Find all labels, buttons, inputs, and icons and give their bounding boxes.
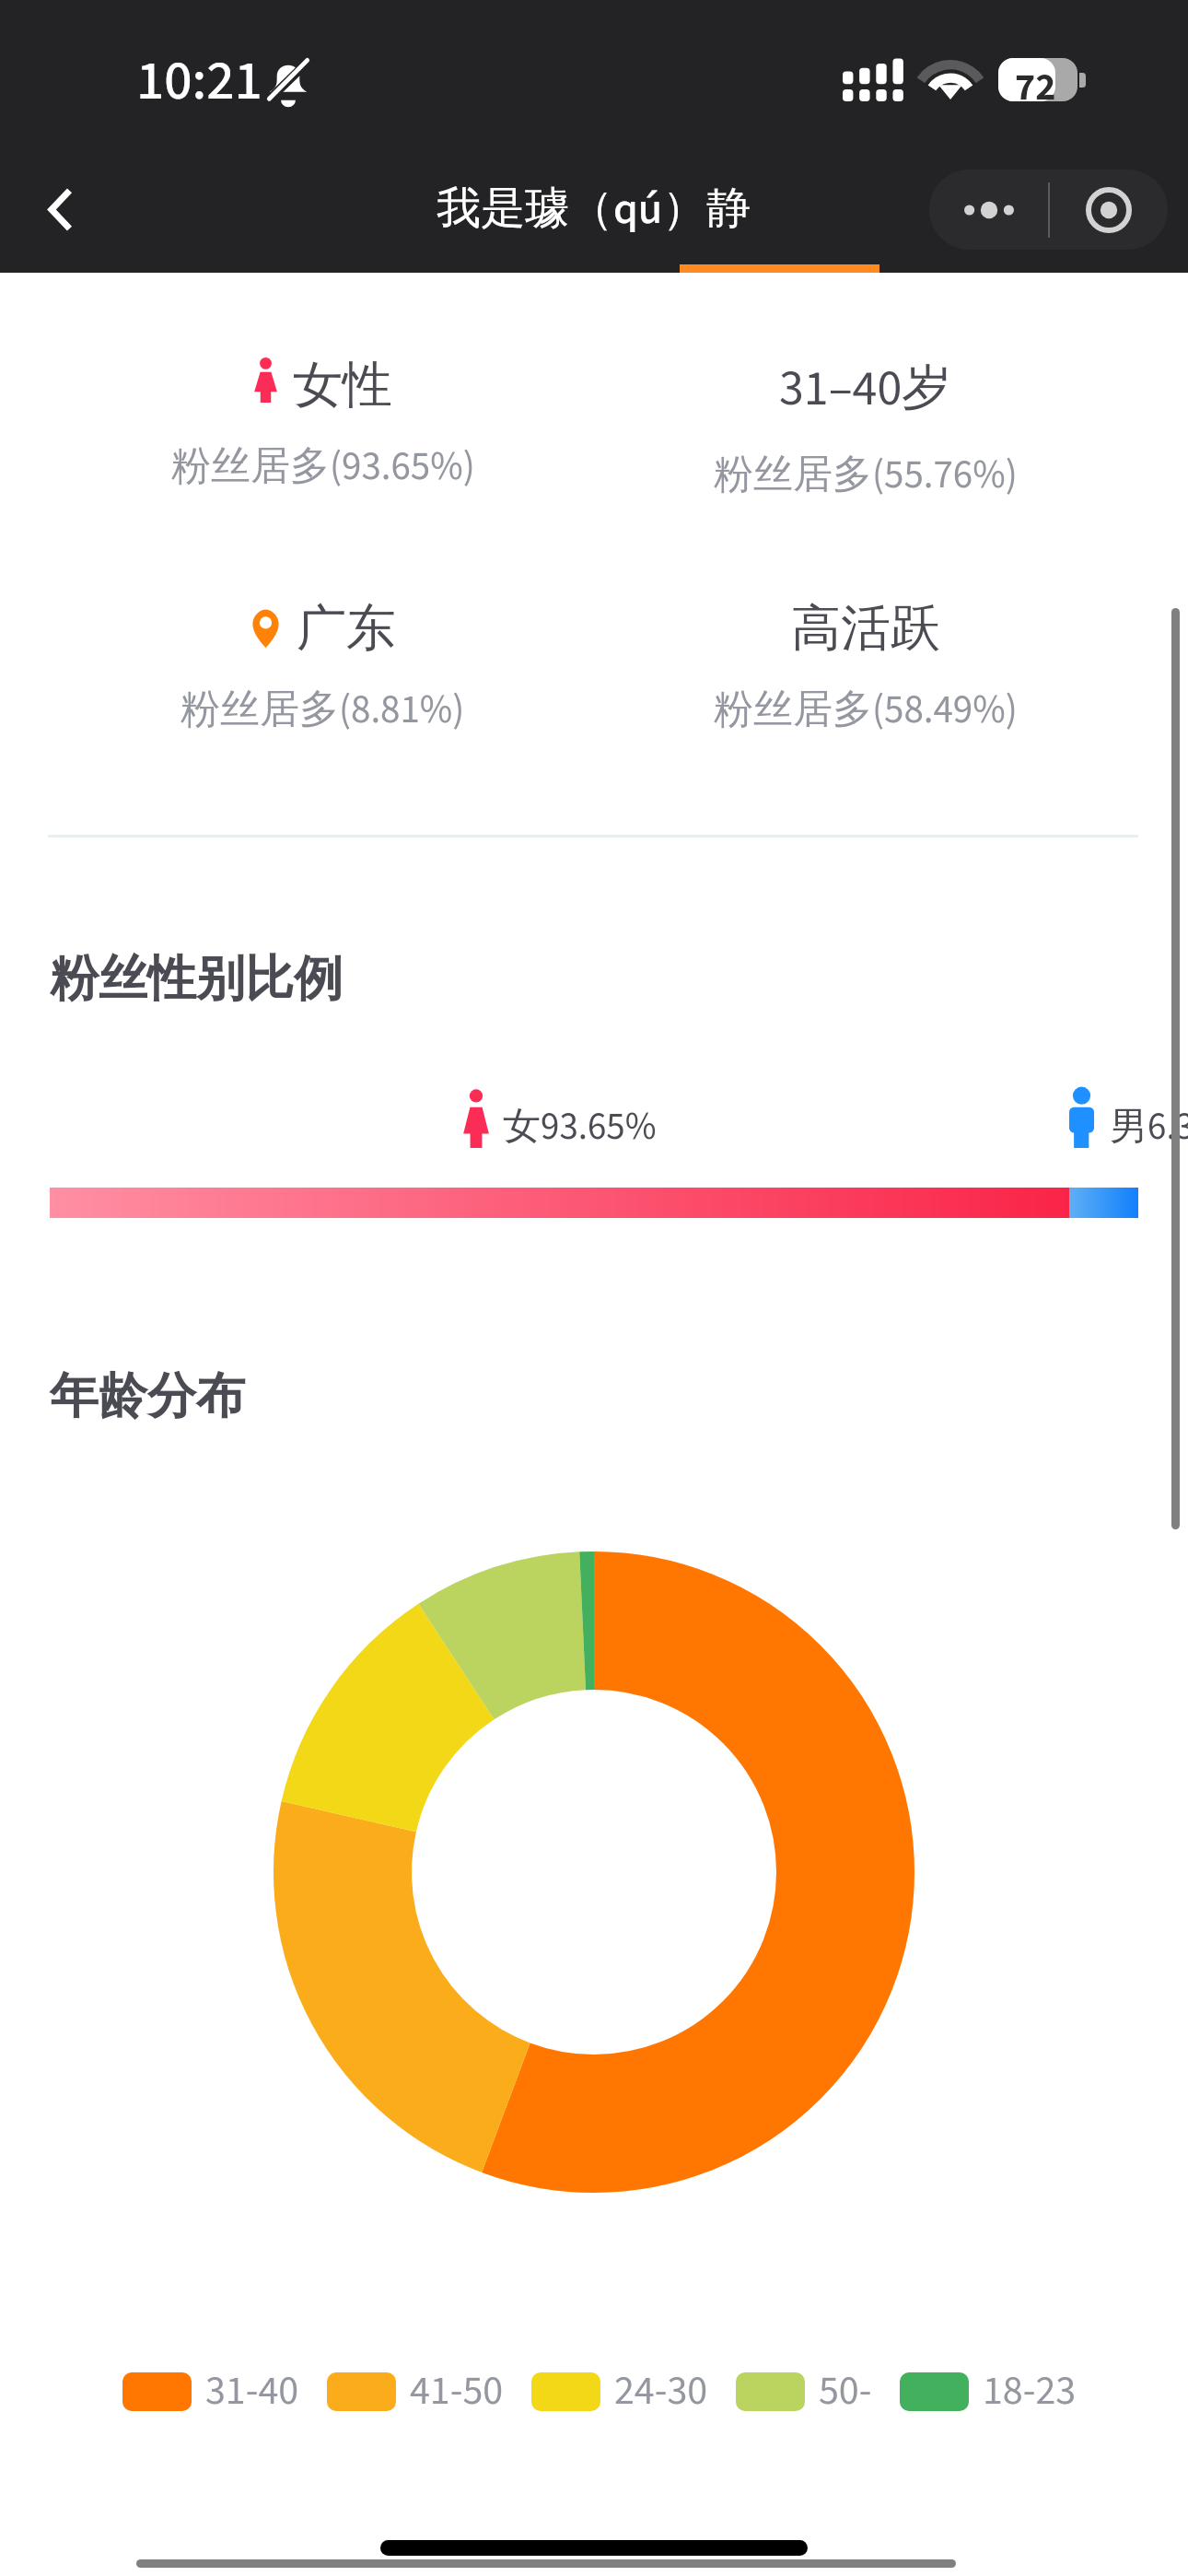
button[interactable]: 女性	[52, 354, 594, 495]
staticText: 31-40	[205, 2362, 299, 2420]
button[interactable]: 31–40岁	[594, 354, 1136, 503]
staticText: 72	[1015, 60, 1056, 115]
button[interactable]: 50-	[736, 2362, 872, 2420]
staticText: 女93.65%	[503, 1100, 657, 1153]
button[interactable]: More options	[929, 170, 1048, 250]
staticText: 41-50	[410, 2362, 504, 2420]
staticText: 粉丝居多(55.76%)	[714, 447, 1018, 503]
staticText: 粉丝居多(58.49%)	[714, 682, 1018, 738]
button[interactable]: 31-40	[122, 2362, 299, 2420]
button[interactable]: 高活跃	[594, 597, 1136, 738]
button[interactable]: 18-23	[900, 2362, 1077, 2420]
staticText: 10:21	[136, 42, 262, 121]
staticText: 24-30	[614, 2362, 708, 2420]
staticText: 粉丝性别比例	[50, 948, 343, 1010]
staticText: 粉丝居多(93.65%)	[171, 439, 475, 495]
staticText: 广东	[297, 597, 396, 660]
staticText: 50-	[819, 2362, 872, 2420]
button[interactable]: Back	[21, 170, 99, 248]
button[interactable]: Close mini program	[1050, 170, 1168, 250]
staticText: 18-23	[983, 2362, 1077, 2420]
button[interactable]: 24-30	[531, 2362, 708, 2420]
button[interactable]: Selected tab	[680, 264, 879, 273]
staticText: 高活跃	[791, 597, 940, 660]
staticText: 31–40岁	[779, 354, 952, 425]
button[interactable]: 广东	[52, 597, 594, 738]
button[interactable]: 41-50	[327, 2362, 504, 2420]
staticText: 年龄分布	[50, 1365, 245, 1427]
staticText: 女性	[293, 354, 392, 416]
staticText: 男6.35%	[1110, 1100, 1188, 1153]
staticText: 我是璩（qú）静	[437, 178, 751, 240]
staticText: 粉丝居多(8.81%)	[181, 682, 465, 738]
